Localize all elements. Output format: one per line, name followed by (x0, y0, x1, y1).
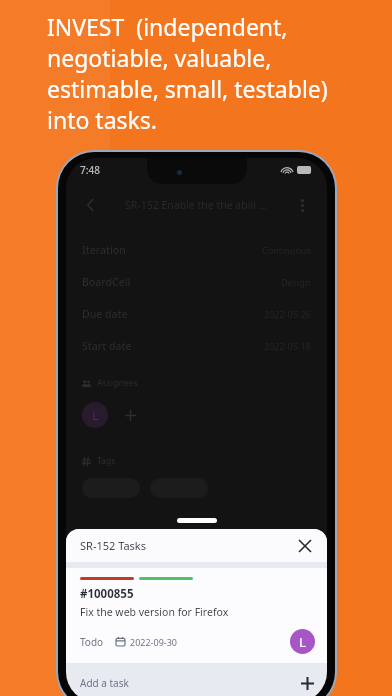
staticText: Start date (82, 339, 132, 353)
button[interactable]: Add assignee (120, 405, 140, 425)
staticText: Tags (97, 455, 116, 467)
staticText: 2022-09-30 (130, 636, 177, 648)
staticText: Design (281, 276, 311, 288)
button[interactable]: Close (293, 534, 317, 558)
staticText: INVEST (independent, (47, 11, 288, 42)
staticText: negotiable, valuable, (47, 42, 272, 73)
staticText: 2022-05-26 (264, 308, 311, 320)
staticText: L (92, 406, 99, 424)
staticText: 7:48 (80, 163, 100, 177)
button[interactable]: Back (78, 192, 104, 218)
staticText: 2022-05-18 (264, 340, 311, 352)
staticText: Continuous (262, 244, 311, 256)
button[interactable]: More options (289, 192, 315, 218)
staticText: into tasks. (47, 104, 158, 135)
staticText: Add a task (80, 676, 129, 690)
staticText: BoardCell (82, 275, 131, 289)
staticText: estimable, small, testable) (47, 73, 328, 104)
staticText: Todo (80, 635, 104, 649)
button[interactable]: #1000855 (66, 568, 327, 663)
button[interactable]: Add a task (66, 668, 327, 696)
staticText: Due date (82, 307, 128, 321)
staticText: Assignees (97, 377, 138, 389)
staticText: Fix the web version for Firefox (80, 605, 229, 619)
staticText: #1000855 (80, 586, 134, 602)
staticText: Iteration (82, 243, 126, 257)
staticText: SR-152 Tasks (80, 538, 146, 553)
staticText: L (299, 633, 306, 651)
staticText: SR-152 Enable the the abili … (125, 198, 267, 212)
